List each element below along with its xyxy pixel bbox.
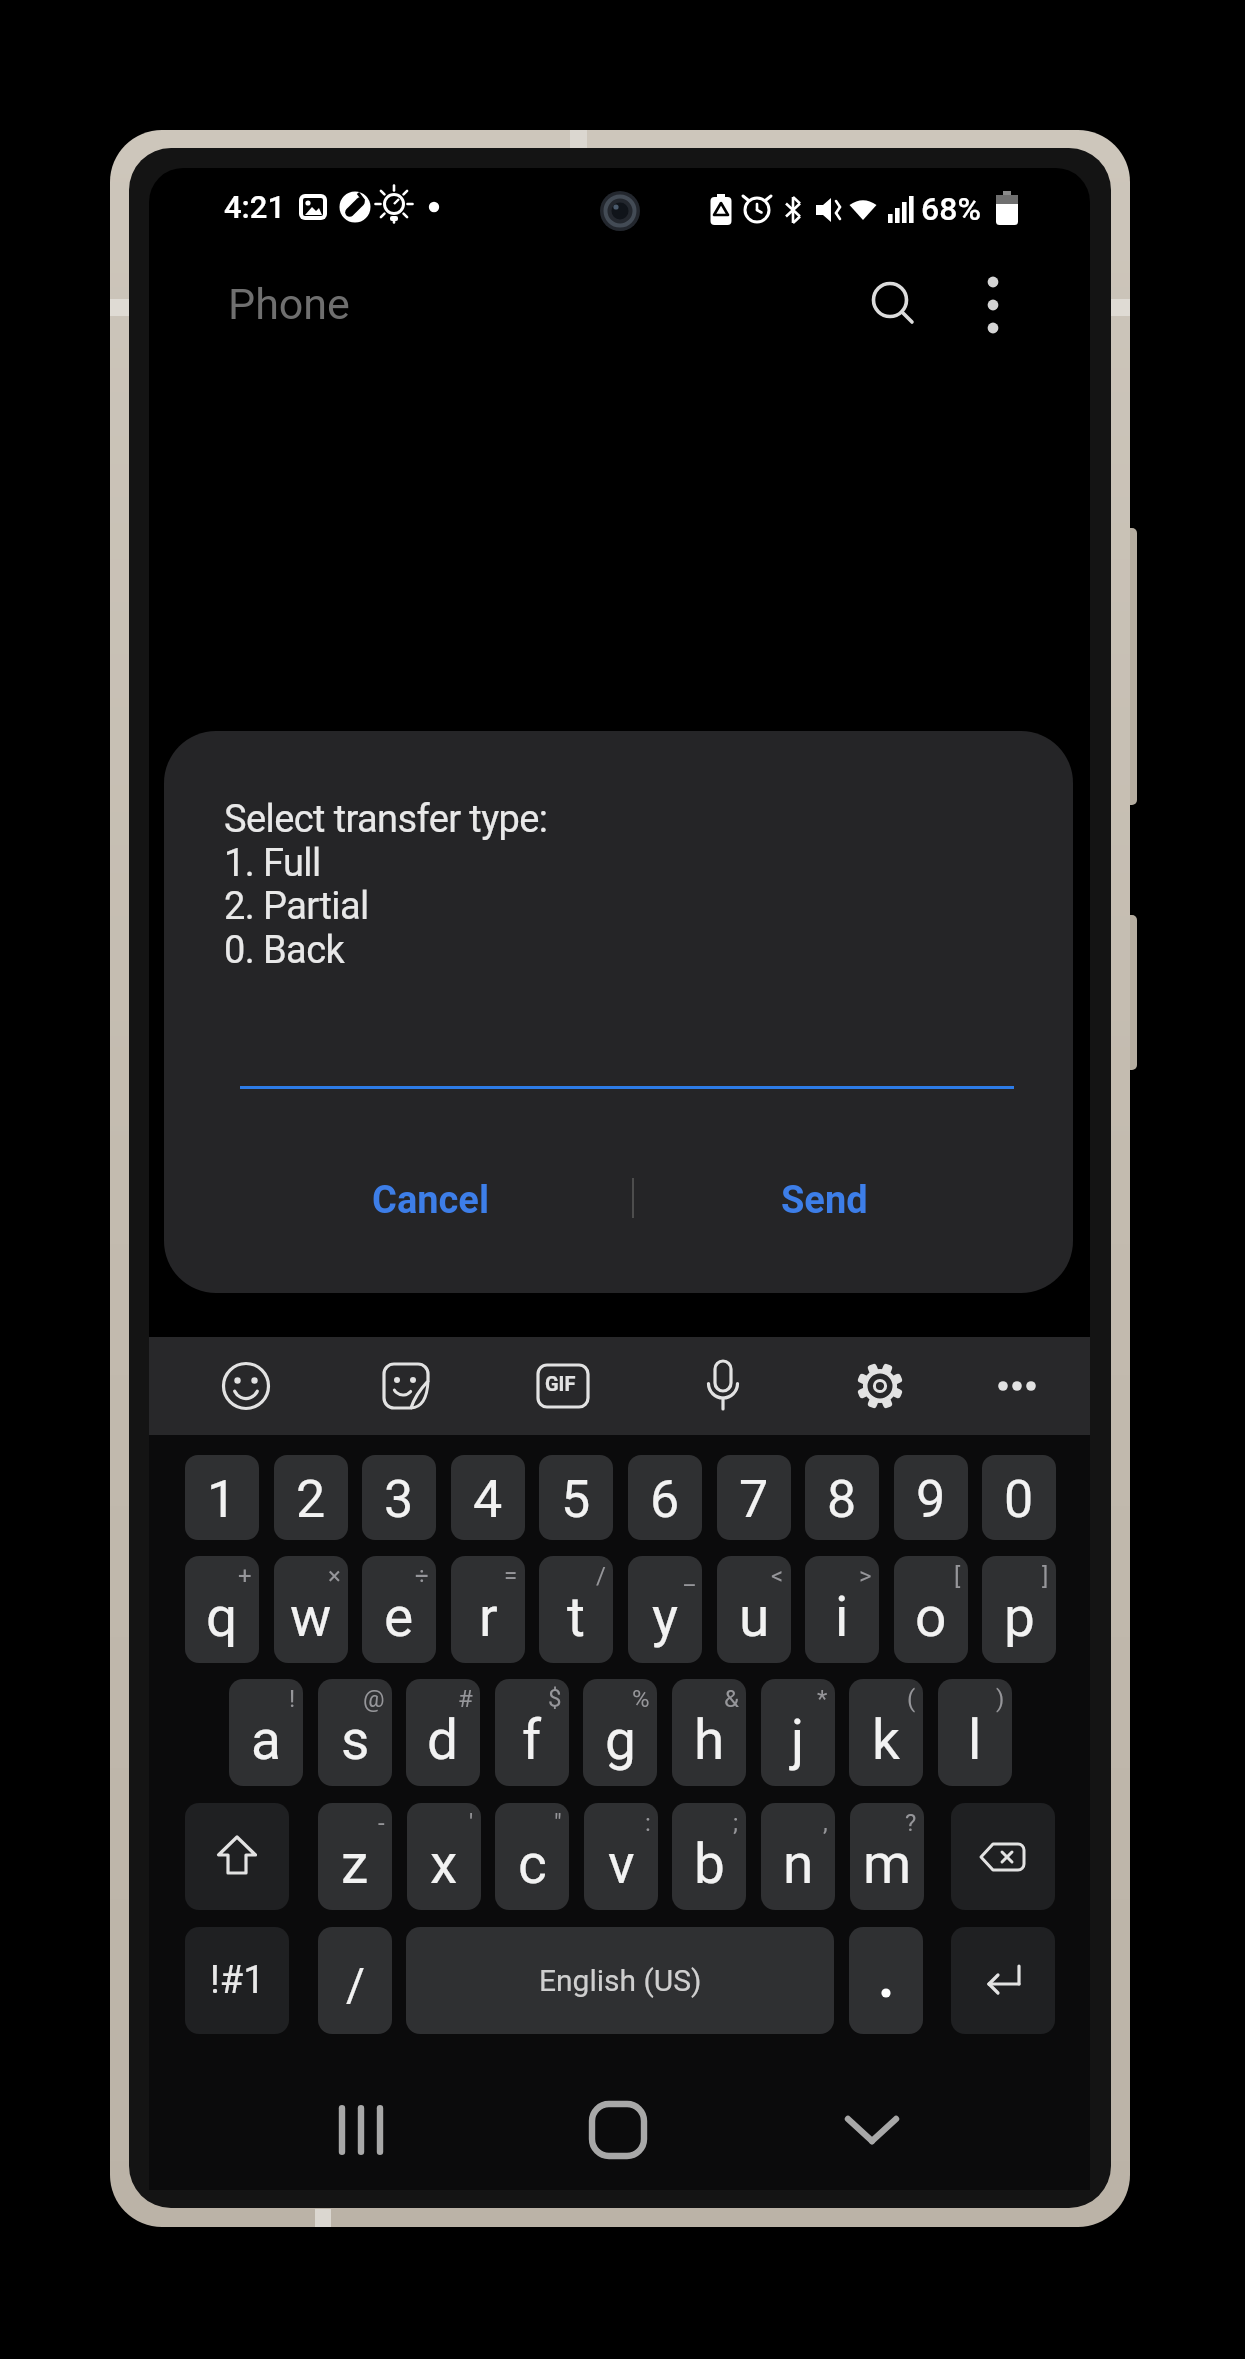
staticText: ( [907,1685,916,1713]
staticText: _ [684,1562,695,1590]
button[interactable]: r [451,1556,525,1663]
button[interactable]: v [584,1803,658,1910]
button[interactable]: w [274,1556,348,1663]
staticText: n [783,1832,814,1896]
staticText: t [567,1585,585,1649]
staticText: 6 [650,1469,680,1530]
button[interactable]: m [850,1803,924,1910]
button[interactable]: p [982,1556,1056,1663]
button[interactable] [810,2090,934,2170]
staticText: × [328,1562,341,1590]
button[interactable]: 3 [362,1455,436,1540]
staticText: 4 [473,1469,503,1530]
staticText: j [791,1708,805,1772]
button[interactable]: f [495,1679,569,1786]
staticText: s [341,1708,370,1772]
staticText: o [915,1585,947,1649]
button[interactable]: l [938,1679,1012,1786]
button[interactable]: 0 [982,1455,1056,1540]
staticText: < [771,1562,784,1590]
button[interactable]: u [717,1556,791,1663]
staticText: " [554,1809,562,1837]
button[interactable] [687,1350,759,1422]
staticText: 9 [916,1469,946,1530]
staticText: c [518,1832,547,1896]
button[interactable]: n [761,1803,835,1910]
button[interactable] [556,2090,680,2170]
button[interactable]: English (US) [406,1927,834,2034]
button[interactable]: a [229,1679,303,1786]
staticText: e [384,1585,414,1649]
button[interactable] [844,1350,916,1422]
button[interactable]: z [318,1803,392,1910]
button[interactable]: 1 [185,1455,259,1540]
staticText: u [739,1585,770,1649]
staticText: ] [1042,1562,1049,1590]
button[interactable]: x [407,1803,481,1910]
button[interactable] [210,1350,282,1422]
staticText: # [458,1685,473,1713]
button[interactable]: s [318,1679,392,1786]
button[interactable]: d [406,1679,480,1786]
button[interactable]: c [495,1803,569,1910]
button[interactable]: 2 [274,1455,348,1540]
button[interactable] [300,2090,424,2170]
button[interactable]: y [628,1556,702,1663]
button[interactable]: k [849,1679,923,1786]
staticText: d [427,1708,459,1772]
button[interactable]: o [894,1556,968,1663]
staticText: q [206,1585,238,1649]
staticText: 7 [739,1469,769,1530]
button[interactable]: g [583,1679,657,1786]
button[interactable] [951,1927,1055,2034]
button[interactable]: / [318,1927,392,2034]
button[interactable]: Cancel [285,1160,575,1240]
button[interactable]: !#1 [185,1927,289,2034]
button[interactable]: t [539,1556,613,1663]
staticText: ; [733,1809,739,1837]
button[interactable]: j [761,1679,835,1786]
staticText: : [645,1809,651,1837]
button[interactable]: 7 [717,1455,791,1540]
button[interactable] [958,265,1028,340]
button[interactable] [240,1010,1014,1089]
staticText: 5 [561,1469,591,1530]
button[interactable] [981,1350,1053,1422]
staticText: v [608,1832,635,1896]
button[interactable]: 6 [628,1455,702,1540]
button[interactable] [370,1350,442,1422]
button[interactable]: 9 [894,1455,968,1540]
button[interactable]: b [672,1803,746,1910]
staticText: 8 [827,1469,857,1530]
button[interactable]: 5 [539,1455,613,1540]
staticText: / [346,1958,365,2012]
staticText: & [724,1685,739,1713]
staticText: , [823,1809,828,1837]
button[interactable]: Send [679,1160,969,1240]
button[interactable] [849,1927,923,2034]
staticText: 68% [921,190,981,228]
staticText: w [290,1585,332,1649]
button[interactable] [855,265,930,340]
button[interactable]: q [185,1556,259,1663]
button[interactable] [527,1350,599,1422]
staticText: ÷ [415,1562,429,1590]
staticText: p [1004,1585,1035,1649]
button[interactable] [185,1803,289,1910]
button[interactable]: i [805,1556,879,1663]
staticText: Cancel [372,1178,489,1223]
staticText: 2 [296,1469,326,1530]
staticText: > [859,1562,872,1590]
button[interactable]: 8 [805,1455,879,1540]
button[interactable] [951,1803,1055,1910]
staticText: = [504,1562,518,1590]
staticText: Select transfer type: [224,797,548,842]
staticText: ? [905,1809,917,1837]
button[interactable]: 4 [451,1455,525,1540]
staticText: Send [781,1178,868,1223]
staticText: / [596,1562,606,1590]
staticText: k [872,1708,900,1772]
button[interactable]: e [362,1556,436,1663]
button[interactable]: h [672,1679,746,1786]
staticText: b [694,1832,725,1896]
